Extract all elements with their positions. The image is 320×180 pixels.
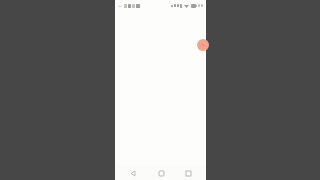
button[interactable]: Recent apps	[179, 166, 197, 180]
button[interactable]: Compose	[197, 39, 209, 51]
button[interactable]: Back	[124, 166, 142, 180]
button[interactable]: Home	[152, 166, 170, 180]
